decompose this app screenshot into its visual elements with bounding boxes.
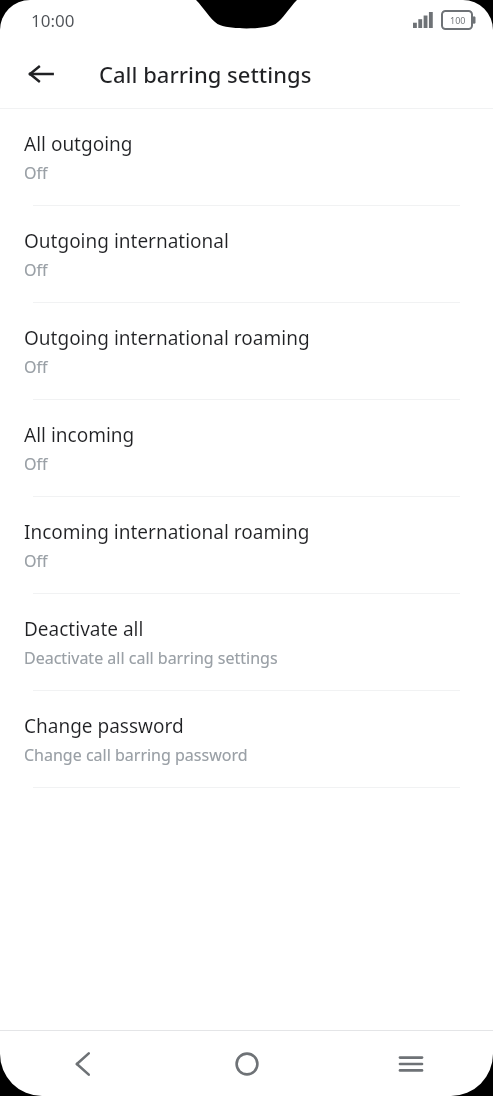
button[interactable]: Back	[0, 1031, 165, 1096]
button[interactable]: Incoming international roaming	[0, 497, 493, 593]
staticText: Off	[24, 162, 48, 184]
staticText: All outgoing	[24, 131, 133, 157]
button[interactable]: All incoming	[0, 400, 493, 496]
button[interactable]: Change password	[0, 691, 493, 787]
staticText: Off	[24, 259, 48, 281]
staticText: 10:00	[31, 9, 75, 32]
button[interactable]: Outgoing international roaming	[0, 303, 493, 399]
button[interactable]: All outgoing	[0, 109, 493, 205]
staticText: Change call barring password	[24, 744, 248, 766]
staticText: Deactivate all call barring settings	[24, 647, 278, 669]
button[interactable]: Outgoing international	[0, 206, 493, 302]
staticText: 100	[450, 14, 466, 26]
staticText: Deactivate all	[24, 616, 144, 642]
button[interactable]: Home	[165, 1031, 329, 1096]
button[interactable]: Back	[17, 50, 65, 98]
button[interactable]: Recents	[329, 1031, 493, 1096]
staticText: Call barring settings	[99, 59, 312, 89]
button[interactable]: Deactivate all	[0, 594, 493, 690]
staticText: Incoming international roaming	[24, 519, 310, 545]
staticText: Change password	[24, 713, 184, 739]
staticText: All incoming	[24, 422, 135, 448]
staticText: Outgoing international	[24, 228, 229, 254]
staticText: Off	[24, 356, 48, 378]
staticText: Outgoing international roaming	[24, 325, 310, 351]
staticText: Off	[24, 453, 48, 475]
staticText: Off	[24, 550, 48, 572]
